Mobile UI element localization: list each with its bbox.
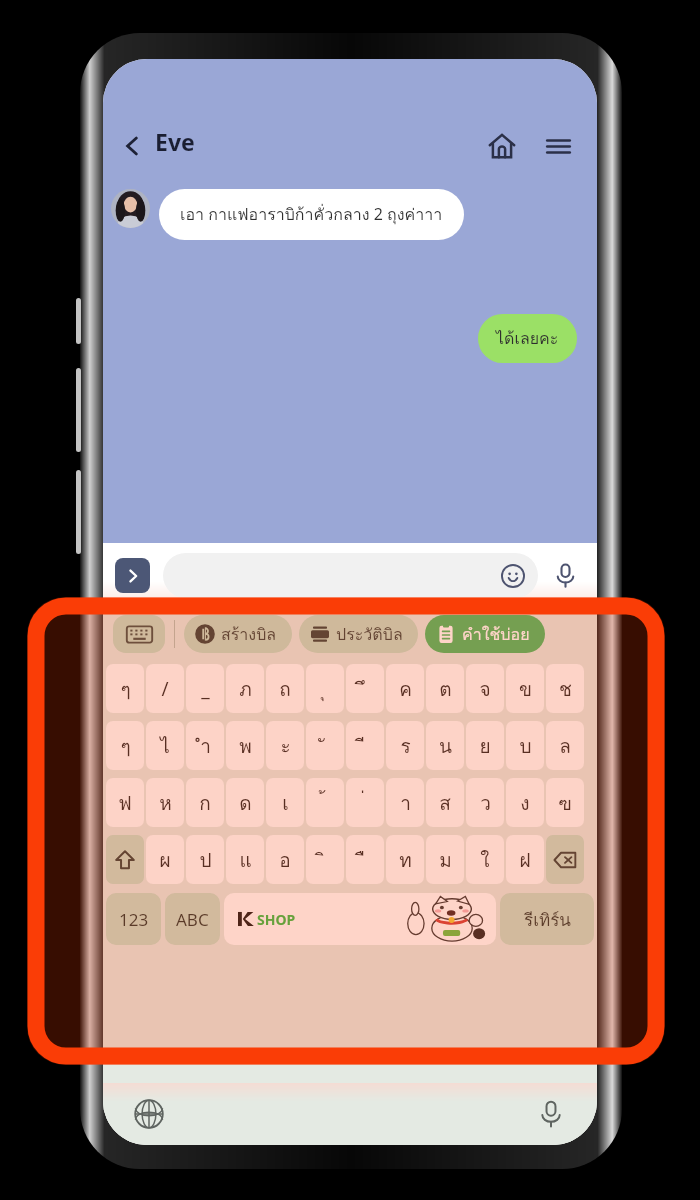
staticText: ำ (200, 731, 211, 761)
staticText: น (439, 731, 452, 761)
button[interactable]: ภ (226, 664, 264, 713)
staticText: ภ (239, 674, 252, 704)
staticText: ห (159, 788, 172, 818)
staticText: เ (282, 788, 289, 818)
button[interactable]: ิ (306, 835, 344, 884)
staticText: ถ (279, 674, 291, 704)
staticText: SHOP (257, 910, 296, 929)
staticText: รีเทิร์น (524, 906, 571, 933)
button[interactable]: ฃ (546, 778, 584, 827)
button[interactable]: ้ (306, 778, 344, 827)
button[interactable]: ถ (266, 664, 304, 713)
button[interactable]: ด (226, 778, 264, 827)
staticText: ร (400, 731, 411, 761)
button[interactable]: แ (226, 835, 264, 884)
staticText: คำใช้บ่อย (462, 622, 530, 647)
staticText: ประวัติบิล (336, 622, 403, 647)
button[interactable]: Home (479, 125, 525, 167)
button[interactable]: ำ (186, 721, 224, 770)
button[interactable]: ร (386, 721, 424, 770)
button[interactable]: ได้เลยคะ (478, 314, 577, 363)
button[interactable]: ท (386, 835, 424, 884)
staticText: _ (201, 676, 210, 702)
button[interactable]: พ (226, 721, 264, 770)
staticText: / (161, 676, 169, 702)
staticText: ๆ (120, 731, 131, 761)
button[interactable]: Keyboard layout (113, 615, 165, 653)
button[interactable]: น (426, 721, 464, 770)
staticText: ย (479, 731, 491, 761)
button[interactable]: ช (546, 664, 584, 713)
button[interactable]: ห (146, 778, 184, 827)
button[interactable]: ี (346, 721, 384, 770)
button[interactable]: Profile photo (111, 189, 150, 228)
button[interactable]: Backspace (546, 835, 584, 884)
button[interactable]: ข (506, 664, 544, 713)
button[interactable]: า (386, 778, 424, 827)
button[interactable]: บ (506, 721, 544, 770)
button[interactable]: ะ (266, 721, 304, 770)
button[interactable]: Change language (127, 1092, 171, 1136)
button[interactable]: K SHOP (224, 893, 496, 945)
button[interactable]: ฟ (106, 778, 144, 827)
button[interactable]: ั (306, 721, 344, 770)
button[interactable]: Back (109, 125, 155, 167)
staticText: บ (519, 731, 532, 761)
button[interactable]: ป (186, 835, 224, 884)
button[interactable]: ่ (346, 778, 384, 827)
button[interactable]: คำใช้บ่อย (425, 615, 545, 653)
button[interactable]: Voice input (529, 1092, 573, 1136)
button[interactable]: ๆ (106, 664, 144, 713)
button[interactable]: ฝ (506, 835, 544, 884)
button[interactable]: Shift (106, 835, 144, 884)
staticText: ข (519, 674, 532, 704)
button[interactable]: ื (346, 835, 384, 884)
staticText: ช (559, 674, 572, 704)
button[interactable]: ประวัติบิล (299, 615, 418, 653)
staticText: ท (399, 845, 412, 875)
button[interactable]: เอา กาแฟอาราบิก้าคั่วกลาง 2 ถุงค่าาา (159, 189, 464, 240)
button[interactable]: อ (266, 835, 304, 884)
staticText: ๆ (120, 674, 131, 704)
staticText: ไ (160, 731, 170, 761)
button[interactable]: ย (466, 721, 504, 770)
staticText: ต (439, 674, 452, 704)
staticText: พ (239, 731, 252, 761)
button[interactable] (163, 553, 538, 598)
staticText: ฃ (558, 788, 572, 818)
button[interactable]: ก (186, 778, 224, 827)
button[interactable]: Expand menu (115, 558, 150, 593)
button[interactable]: ABC (165, 893, 220, 945)
button[interactable]: _ (186, 664, 224, 713)
button[interactable]: Voice message (545, 555, 585, 595)
staticText: ล (559, 731, 571, 761)
button[interactable]: ใ (466, 835, 504, 884)
button[interactable]: ต (426, 664, 464, 713)
button[interactable]: ล (546, 721, 584, 770)
button[interactable]: ม (426, 835, 464, 884)
button[interactable]: ง (506, 778, 544, 827)
button[interactable]: เ (266, 778, 304, 827)
staticText: ส (439, 788, 451, 818)
button[interactable]: ไ (146, 721, 184, 770)
button[interactable]: ค (386, 664, 424, 713)
button[interactable]: ุ (306, 664, 344, 713)
staticText: ผ (159, 845, 171, 875)
staticText: ม (439, 845, 452, 875)
button[interactable]: ึ (346, 664, 384, 713)
staticText: ว (480, 788, 491, 818)
staticText: ใ (480, 845, 490, 875)
button[interactable]: รีเทิร์น (500, 893, 594, 945)
staticText: อ (279, 845, 291, 875)
staticText: ฟ (118, 788, 132, 818)
button[interactable]: ผ (146, 835, 184, 884)
button[interactable]: Menu (535, 125, 581, 167)
button[interactable]: ว (466, 778, 504, 827)
button[interactable]: / (146, 664, 184, 713)
button[interactable]: 123 (106, 893, 161, 945)
button[interactable]: ๆ (106, 721, 144, 770)
staticText: แ (239, 845, 252, 875)
button[interactable]: จ (466, 664, 504, 713)
button[interactable]: สร้างบิล (184, 615, 292, 653)
button[interactable]: ส (426, 778, 464, 827)
